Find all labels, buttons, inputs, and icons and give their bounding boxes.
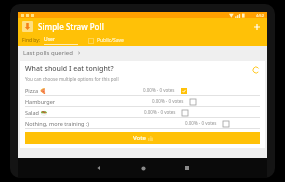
staticText: What should I eat tonight?: [25, 64, 114, 74]
staticText: Vote: [133, 134, 146, 142]
staticText: Simple Straw Poll: [38, 21, 104, 32]
staticText: Last polls queried: [23, 49, 73, 57]
button[interactable]: Back: [90, 159, 108, 177]
staticText: Public/Save: [97, 37, 124, 44]
button[interactable]: Public/Save: [88, 37, 124, 44]
staticText: 4:52: [256, 13, 264, 18]
button[interactable]: Last polls queried: [18, 46, 267, 59]
button[interactable]: Nothing, more training :): [25, 118, 260, 128]
staticText: 0.00% - 0 votes: [152, 98, 184, 104]
button[interactable]: Create poll: [250, 20, 263, 33]
staticText: 0.00% - 0 votes: [185, 120, 217, 126]
staticText: Find by:: [22, 37, 41, 44]
staticText: User: [44, 36, 55, 43]
staticText: Salad 🥗: [25, 109, 48, 116]
button[interactable]: App icon: [22, 21, 33, 32]
staticText: Hamburger: [25, 98, 56, 105]
button[interactable]: Refresh: [251, 65, 260, 74]
button[interactable]: Home: [134, 159, 152, 177]
button[interactable]: Vote: [25, 132, 260, 144]
button[interactable]: Recent apps: [178, 159, 196, 177]
staticText: 0.00% - 0 votes: [143, 87, 175, 93]
staticText: You can choose multiple options for this…: [25, 76, 119, 82]
button[interactable]: Pizza 🍕: [25, 85, 260, 95]
staticText: 0.00% - 0 votes: [144, 109, 176, 115]
staticText: Pizza 🍕: [25, 87, 47, 94]
staticText: Nothing, more training :): [25, 120, 89, 127]
button[interactable]: Salad 🥗: [25, 107, 260, 117]
button[interactable]: User: [44, 36, 78, 45]
button[interactable]: Hamburger: [25, 96, 260, 106]
